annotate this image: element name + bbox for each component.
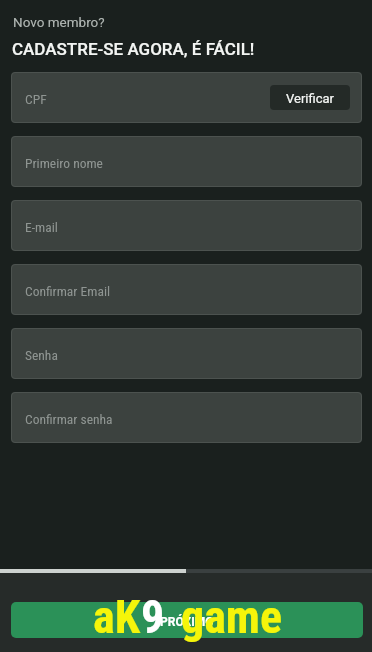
button[interactable]: E-mail [11,200,362,251]
staticText: Primeiro nome [25,155,103,171]
staticText: Novo membro? [13,14,105,30]
staticText: Confirmar senha [25,411,113,427]
staticText: 9 [141,590,165,644]
staticText: CADASTRE-SE AGORA, É FÁCIL! [12,39,255,59]
staticText: E-mail [25,219,58,235]
button[interactable]: PRÓXIMO [11,602,363,638]
staticText: Senha [25,347,58,363]
button[interactable]: Primeiro nome [11,136,362,187]
button[interactable]: Confirmar senha [11,392,362,443]
button[interactable]: Senha [11,328,362,379]
staticText: Verificar [286,91,334,106]
staticText: PRÓXIMO [160,615,214,629]
staticText: Confirmar Email [25,283,111,299]
button[interactable]: Verificar [270,85,350,110]
staticText: game [181,590,282,644]
button[interactable]: CPF [11,72,362,123]
staticText: CPF [25,91,47,107]
staticText: aK [93,590,141,644]
button[interactable]: Confirmar Email [11,264,362,315]
